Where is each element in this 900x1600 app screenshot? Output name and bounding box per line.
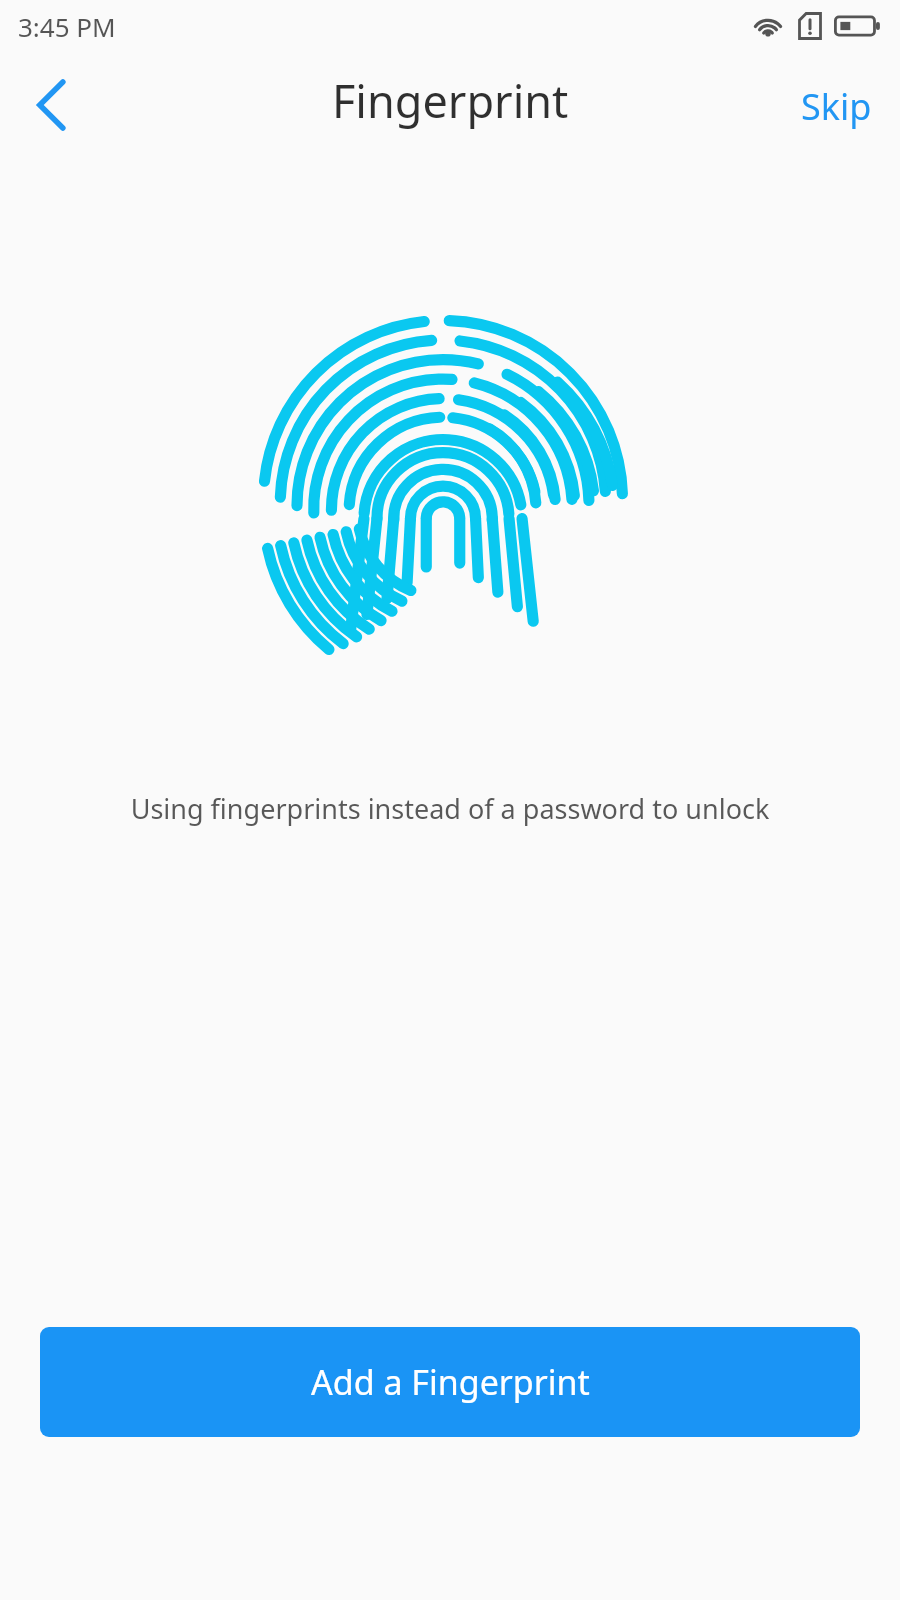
staticText: Add a Fingerprint	[311, 1359, 590, 1405]
staticText: 3:45 PM	[18, 9, 116, 44]
button[interactable]: Back	[0, 53, 104, 157]
staticText: Fingerprint	[332, 70, 569, 131]
button[interactable]: Add a Fingerprint	[40, 1327, 860, 1437]
staticText: Skip	[801, 82, 872, 131]
button[interactable]: Skip	[771, 62, 900, 157]
staticText: Using fingerprints instead of a password…	[0, 790, 900, 827]
